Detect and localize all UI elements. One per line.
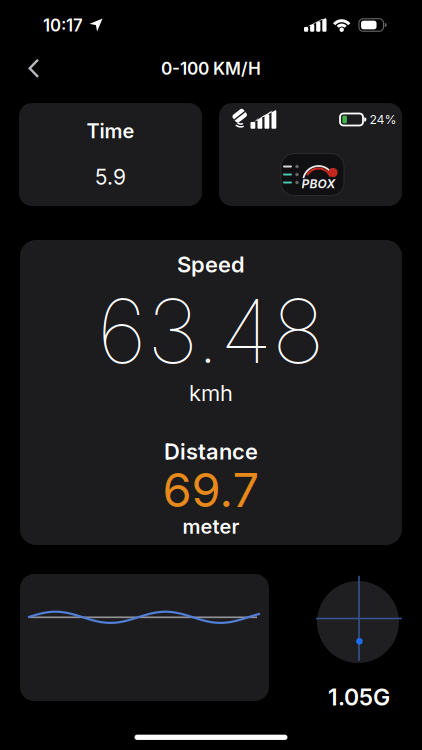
staticText: Distance: [164, 438, 258, 464]
staticText: PBOX: [301, 177, 335, 191]
staticText: 5.9: [95, 165, 126, 189]
staticText: 24%: [369, 112, 396, 127]
button[interactable]: Back: [19, 50, 49, 86]
staticText: 69.7: [162, 462, 259, 518]
staticText: 63.48: [97, 279, 325, 383]
staticText: 1.05G: [328, 683, 390, 711]
staticText: meter: [182, 515, 239, 538]
staticText: 0-100 KM/H: [161, 58, 261, 79]
staticText: Speed: [177, 251, 245, 277]
staticText: kmh: [189, 380, 233, 406]
staticText: Time: [86, 119, 134, 143]
staticText: 10:17: [43, 16, 83, 35]
